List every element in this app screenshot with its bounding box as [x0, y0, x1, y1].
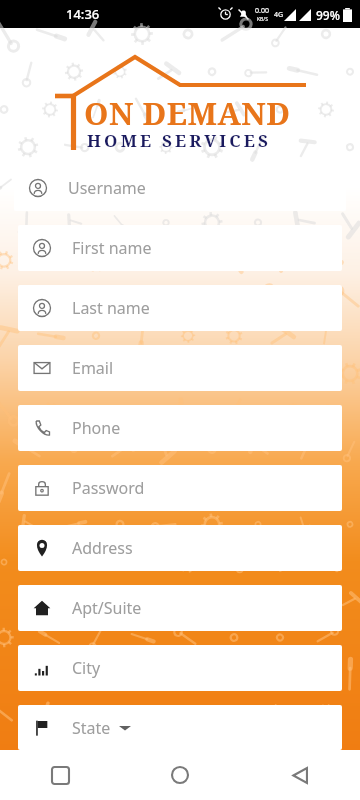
button[interactable]: Email — [18, 345, 342, 391]
staticText: KB/S — [257, 16, 268, 23]
button[interactable]: First name — [18, 225, 342, 271]
button[interactable]: Last name — [18, 285, 342, 331]
button[interactable]: Home — [120, 750, 240, 800]
staticText: Address — [72, 537, 133, 559]
staticText: Last name — [72, 297, 150, 319]
staticText: 0.00 — [255, 6, 269, 16]
staticText: Email — [72, 357, 114, 379]
button[interactable]: Address — [18, 525, 342, 571]
button[interactable]: Password — [18, 465, 342, 511]
staticText: Password — [72, 477, 145, 499]
staticText: Phone — [72, 417, 121, 439]
staticText: State — [72, 717, 111, 739]
staticText: HOME SERVICES — [87, 129, 272, 152]
button[interactable]: Username — [14, 165, 346, 211]
button[interactable]: City — [18, 645, 342, 691]
staticText: ON DEMAND — [84, 92, 291, 134]
button[interactable]: Recents — [0, 750, 120, 800]
staticText: First name — [72, 237, 152, 259]
staticText: 4G — [274, 10, 284, 20]
button[interactable]: Phone — [18, 405, 342, 451]
button[interactable]: Apt/Suite — [18, 585, 342, 631]
staticText: City — [72, 657, 101, 679]
button[interactable]: Back — [240, 750, 360, 800]
staticText: Username — [68, 177, 146, 199]
staticText: 99% — [316, 7, 340, 23]
staticText: Apt/Suite — [72, 597, 142, 619]
staticText: 14:36 — [66, 5, 100, 23]
button[interactable]: State — [18, 705, 342, 750]
